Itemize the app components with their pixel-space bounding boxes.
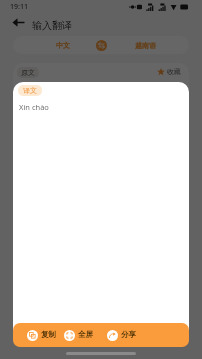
button[interactable]: 中文 <box>38 36 88 54</box>
button[interactable]: 越南语 <box>120 36 170 54</box>
staticText: 收藏 <box>167 67 181 76</box>
staticText: 译文 <box>23 86 37 95</box>
button[interactable]: Back <box>11 15 26 30</box>
staticText: 输入翻译 <box>32 19 72 32</box>
button[interactable]: Swap languages <box>96 40 107 51</box>
button[interactable]: 全屏 <box>64 323 94 347</box>
staticText: 19:11 <box>10 2 28 12</box>
button[interactable]: 收藏 <box>157 67 181 76</box>
staticText: 分享 <box>121 330 137 340</box>
button[interactable]: 复制 <box>27 323 57 347</box>
staticText: 中文 <box>56 41 70 50</box>
button[interactable]: 原文 <box>17 67 39 78</box>
staticText: 全屏 <box>78 330 94 340</box>
button[interactable]: 分享 <box>107 323 137 347</box>
staticText: 原文 <box>21 68 35 77</box>
staticText: 复制 <box>41 330 57 340</box>
staticText: Xin chào <box>19 102 49 112</box>
staticText: 越南语 <box>135 41 156 50</box>
